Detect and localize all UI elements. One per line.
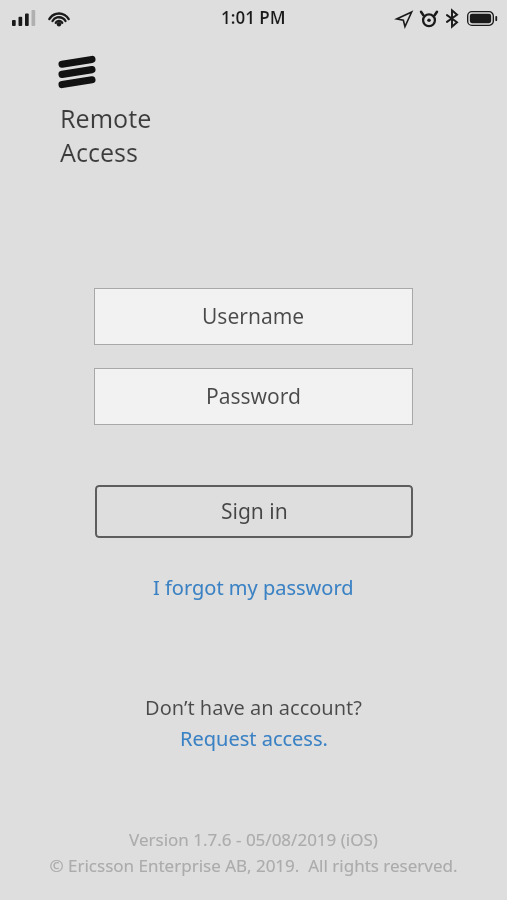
button[interactable]: I forgot my password [145,570,362,605]
staticText: Remote [60,101,152,135]
staticText: 1:01 PM [221,6,286,29]
staticText: Username [202,302,305,331]
staticText: Version 1.7.6 - 05/08/2019 (iOS) [129,828,378,851]
staticText: Request access. [180,725,328,752]
staticText: © Ericsson Enterprise AB, 2019. All righ… [49,854,458,877]
staticText: Sign in [221,497,288,526]
staticText: I forgot my password [153,574,354,601]
button[interactable]: Sign in [95,485,413,538]
staticText: Access [60,135,139,169]
staticText: Don’t have an account? [145,694,362,721]
button[interactable]: Password [94,368,413,425]
button[interactable]: Request access. [172,723,336,754]
button[interactable]: Username [94,288,413,345]
staticText: Password [206,382,301,411]
